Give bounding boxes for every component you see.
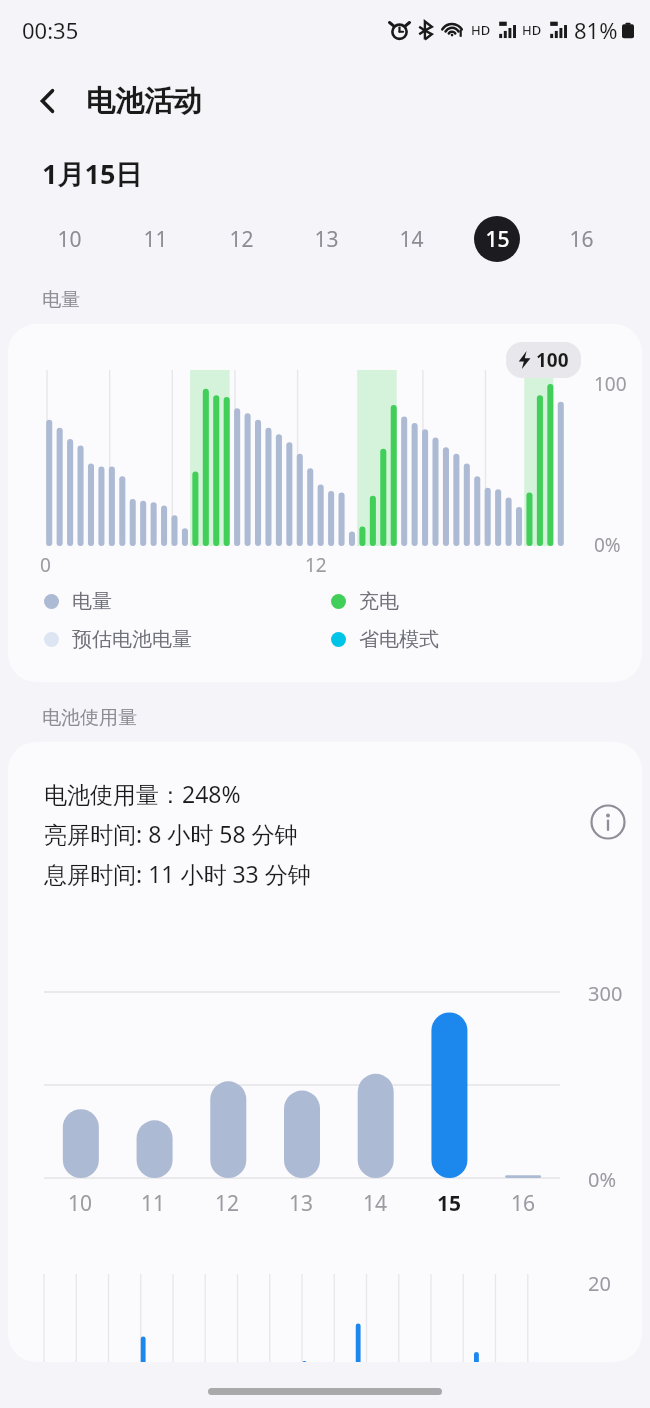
staticText: 电池使用量: [42, 706, 137, 730]
staticText: 300: [588, 980, 623, 1007]
staticText: 81%: [574, 15, 618, 45]
staticText: 13: [289, 1189, 314, 1218]
button[interactable]: 电池使用量：248%: [8, 742, 642, 1362]
staticText: 10: [68, 1189, 93, 1218]
staticText: 0%: [588, 1166, 617, 1193]
staticText: 14: [399, 225, 424, 254]
button[interactable]: 14: [369, 204, 454, 274]
staticText: 00:35: [22, 15, 79, 45]
staticText: 电池活动: [86, 83, 202, 120]
staticText: 充电: [359, 589, 399, 614]
staticText: 省电模式: [359, 627, 439, 652]
staticText: 16: [569, 225, 594, 254]
staticText: 14: [363, 1189, 388, 1218]
staticText: 电量: [72, 589, 112, 614]
staticText: 15: [485, 225, 510, 254]
staticText: 11: [143, 225, 168, 254]
staticText: 11: [141, 1189, 166, 1218]
button[interactable]: 15: [454, 204, 539, 274]
staticText: 20: [588, 1270, 611, 1297]
staticText: 13: [314, 225, 339, 254]
button[interactable]: 10: [26, 204, 112, 274]
staticText: 0%: [594, 532, 621, 558]
staticText: 12: [229, 225, 254, 254]
button[interactable]: 信息: [584, 798, 632, 846]
staticText: 亮屏时间: 8 小时 58 分钟: [44, 818, 298, 849]
staticText: HD: [522, 21, 542, 39]
button[interactable]: 16: [539, 204, 624, 274]
staticText: 16: [511, 1189, 536, 1218]
staticText: 100: [594, 371, 627, 397]
staticText: HD: [471, 21, 491, 39]
staticText: 0: [40, 552, 51, 578]
staticText: 12: [305, 552, 327, 578]
staticText: 1月15日: [42, 155, 143, 192]
staticText: 10: [57, 225, 82, 254]
button[interactable]: 13: [284, 204, 369, 274]
button[interactable]: 返回: [24, 77, 72, 125]
button[interactable]: 100: [8, 324, 642, 682]
staticText: 15: [437, 1189, 462, 1218]
staticText: 100: [536, 347, 569, 373]
button[interactable]: 11: [112, 204, 198, 274]
staticText: 预估电池电量: [72, 627, 192, 652]
staticText: 息屏时间: 11 小时 33 分钟: [44, 858, 311, 889]
button[interactable]: 12: [198, 204, 284, 274]
staticText: 电池使用量：248%: [44, 778, 241, 809]
staticText: 12: [215, 1189, 240, 1218]
staticText: 电量: [42, 288, 80, 312]
